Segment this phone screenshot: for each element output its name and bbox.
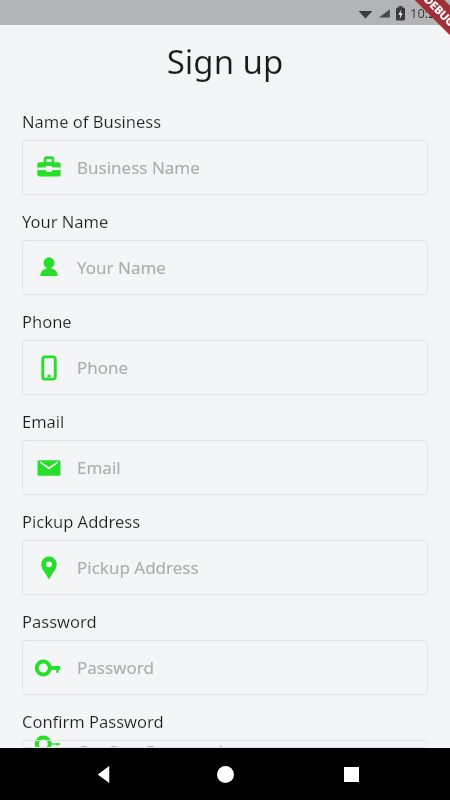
- staticText: Password: [77, 656, 154, 679]
- button[interactable]: Password: [22, 640, 428, 695]
- staticText: Email: [77, 456, 121, 479]
- button[interactable]: Phone: [22, 340, 428, 395]
- staticText: Name of Business: [22, 110, 162, 132]
- staticText: Business Name: [77, 156, 200, 179]
- staticText: Confirm Password: [77, 740, 223, 748]
- staticText: Phone: [22, 310, 72, 332]
- staticText: DEBUG: [421, 0, 450, 29]
- staticText: Your Name: [22, 210, 109, 232]
- staticText: Password: [22, 610, 97, 632]
- button[interactable]: Business Name: [22, 140, 428, 195]
- button[interactable]: Back: [84, 754, 124, 794]
- button[interactable]: Home: [203, 752, 247, 796]
- staticText: Phone: [77, 356, 129, 379]
- button[interactable]: Confirm Password: [22, 740, 428, 748]
- staticText: Confirm Password: [22, 710, 164, 732]
- button[interactable]: Recent apps: [331, 754, 371, 794]
- button[interactable]: Email: [22, 440, 428, 495]
- button[interactable]: Pickup Address: [22, 540, 428, 595]
- staticText: Email: [22, 410, 65, 432]
- staticText: Sign up: [0, 39, 450, 84]
- staticText: 10:29: [410, 4, 444, 22]
- staticText: Your Name: [77, 256, 166, 279]
- button[interactable]: Your Name: [22, 240, 428, 295]
- staticText: Pickup Address: [22, 510, 141, 532]
- staticText: Pickup Address: [77, 556, 199, 579]
